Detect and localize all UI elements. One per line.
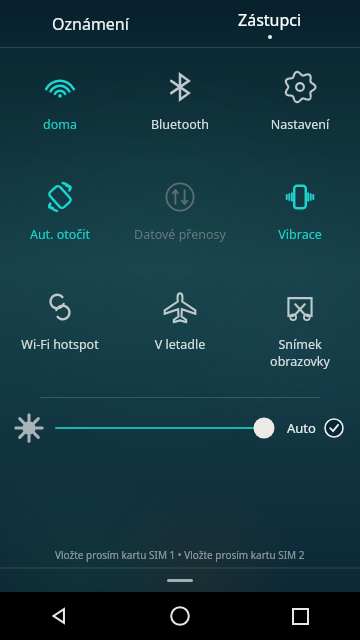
staticText: Vložte prosím kartu SIM 1 • Vložte prosí… (55, 548, 305, 562)
staticText: Vibrace (240, 226, 360, 243)
button[interactable]: Oznámení (0, 0, 180, 48)
button[interactable]: Bluetooth (120, 56, 240, 166)
button[interactable]: Režim v letadle (120, 276, 240, 391)
staticText: Bluetooth (120, 116, 240, 133)
button[interactable]: Automatické otáčení (0, 166, 120, 276)
button[interactable]: Wi-Fi hotspot (0, 276, 120, 391)
staticText: V letadle (120, 336, 240, 353)
button[interactable]: Datové přenosy (120, 166, 240, 276)
staticText: Aut. otočit (0, 226, 120, 243)
button[interactable]: Poslední aplikace (240, 592, 360, 640)
button[interactable]: Nastavení (240, 56, 360, 166)
button[interactable]: Zpět (0, 592, 120, 640)
button[interactable]: Jas (54, 410, 273, 446)
button[interactable]: Auto (285, 412, 346, 444)
staticText: Auto (287, 419, 316, 437)
button[interactable]: Zástupci (180, 0, 360, 48)
button[interactable]: Wi-Fi doma (0, 56, 120, 166)
staticText: Wi-Fi hotspot (0, 336, 120, 353)
button[interactable]: Snímek obrazovky (240, 276, 360, 391)
button[interactable] (167, 579, 193, 582)
staticText: Datové přenosy (120, 226, 240, 243)
button[interactable]: Domů (120, 592, 240, 640)
staticText: Snímek obrazovky (240, 336, 360, 369)
staticText: Oznámení (52, 13, 129, 35)
staticText: Nastavení (240, 116, 360, 133)
staticText: doma (0, 116, 120, 133)
staticText: Zástupci (238, 9, 302, 31)
button[interactable]: Vibrace (240, 166, 360, 276)
